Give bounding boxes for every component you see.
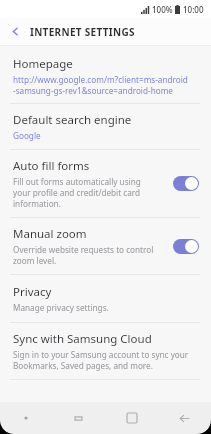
staticText: Manage privacy settings. [13,302,109,313]
button[interactable]: Navigation hint [0,402,52,434]
button[interactable]: Homepage [0,50,211,103]
staticText: Google [13,130,41,141]
button[interactable]: Toggle [173,176,199,191]
staticText: Manual zoom [13,226,87,242]
staticText: Sign in to your Samsung account to sync … [13,349,189,371]
button[interactable]: Recents [52,402,105,434]
staticText: Override website requests to control zoo… [13,244,154,266]
button[interactable]: Home [105,402,158,434]
staticText: http://www.google.com/m?client=ms-androi… [13,74,188,96]
staticText: 10:00 [183,4,204,15]
staticText: Default search engine [13,112,132,128]
button[interactable]: Back [158,402,211,434]
button[interactable]: Auto fill forms [0,150,211,217]
button[interactable]: Privacy [0,275,211,322]
staticText: INTERNET SETTINGS [30,25,135,39]
staticText: Auto fill forms [13,158,90,174]
button[interactable]: Manual zoom [0,218,211,274]
staticText: 100% [152,4,173,15]
button[interactable]: Sync with Samsung Cloud [0,323,211,379]
staticText: Homepage [13,56,73,72]
button[interactable]: Default search engine [0,104,211,149]
button[interactable]: Toggle [173,239,199,254]
staticText: Privacy [13,284,52,300]
staticText: Fill out forms automatically using your … [13,176,141,209]
button[interactable]: Back [0,18,30,45]
staticText: Sync with Samsung Cloud [13,331,152,347]
